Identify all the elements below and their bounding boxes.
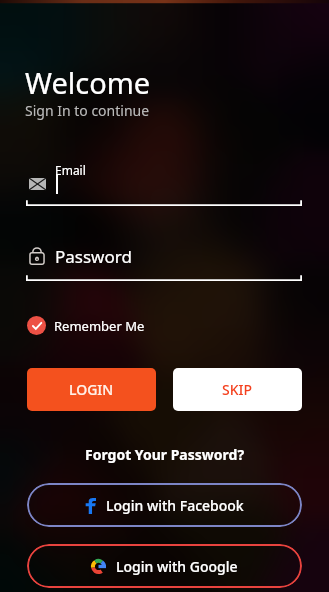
staticText: Email <box>55 162 86 178</box>
staticText: Remember Me <box>54 317 145 335</box>
button[interactable]: Login with Google <box>27 544 302 588</box>
staticText: Sign In to continue <box>25 101 150 120</box>
staticText: SKIP <box>222 380 253 399</box>
staticText: LOGIN <box>69 380 114 399</box>
staticText: Welcome <box>25 63 151 102</box>
button[interactable]: Forgot Your Password? <box>81 441 249 468</box>
button[interactable]: Email <box>0 158 329 206</box>
staticText: Password <box>55 245 132 268</box>
button[interactable]: LOGIN <box>27 368 156 411</box>
button[interactable]: Login with Facebook <box>27 483 302 527</box>
button[interactable]: Password <box>0 233 329 281</box>
button[interactable]: Remember Me <box>27 316 145 335</box>
button[interactable]: SKIP <box>173 368 302 411</box>
staticText: Login with Facebook <box>106 496 244 515</box>
staticText: Login with Google <box>116 557 238 576</box>
